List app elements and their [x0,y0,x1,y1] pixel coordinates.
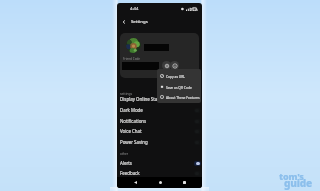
button[interactable]: Save as QR Code [157,81,201,92]
staticText: Save as QR Code [166,85,192,89]
staticText: settings [120,92,132,96]
staticText: other [120,152,129,156]
button[interactable]: Friend Code [120,33,199,78]
staticText: Feedback [120,170,140,176]
button[interactable]: Display Online Status [117,94,202,104]
staticText: Voice Chat [120,128,142,134]
button[interactable]: Share [162,61,171,70]
button[interactable]: Info [170,61,179,70]
staticText: About These Features [166,95,200,99]
staticText: Alerts [120,160,132,166]
staticText: guide [284,176,312,190]
button[interactable]: Alerts [117,158,202,168]
staticText: Settings [131,18,148,24]
staticText: 4:44 [130,6,139,12]
button[interactable]: Voice Chat [117,126,202,136]
staticText: Display Online Status [120,96,164,102]
button[interactable]: Dark Mode [117,105,202,115]
staticText: Power Saving [120,139,148,145]
staticText: Notifications [120,118,147,124]
staticText: Copy as URL [166,74,186,78]
button[interactable]: Power Saving [117,137,202,147]
staticText: Dark Mode [120,107,143,113]
staticText: Friend Code [123,57,140,61]
staticText: 21% [190,7,198,12]
button[interactable]: Back [118,16,129,27]
button[interactable]: Notifications [117,116,202,126]
staticText: tom's [279,170,304,182]
button[interactable]: Recents [178,177,190,188]
button[interactable]: About These Features [157,92,201,102]
button[interactable]: Home [154,177,166,188]
button[interactable]: Copy as URL [157,70,201,81]
button[interactable]: Back [129,177,141,188]
button[interactable]: Feedback [117,168,202,178]
